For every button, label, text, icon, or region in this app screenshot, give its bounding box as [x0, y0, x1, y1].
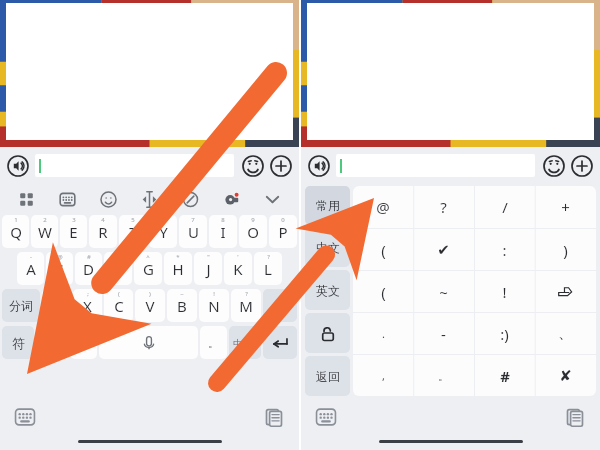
button[interactable]: ?: [231, 289, 261, 322]
button[interactable]: Clipboard: [564, 406, 586, 428]
button[interactable]: Collapse: [252, 184, 293, 215]
button[interactable]: Keyboard: [14, 406, 36, 428]
button[interactable]: %: [104, 252, 132, 285]
button[interactable]: 中/英: [229, 326, 261, 359]
button[interactable]: ~: [413, 271, 474, 312]
button[interactable]: Backspace: [263, 289, 297, 322]
button[interactable]: Attach: [170, 184, 211, 215]
button[interactable]: 3: [60, 215, 87, 248]
button[interactable]: .: [353, 313, 413, 354]
button[interactable]: [336, 154, 535, 177]
button[interactable]: @: [353, 186, 413, 228]
button[interactable]: 返回: [305, 356, 350, 396]
button[interactable]: More: [270, 155, 292, 177]
button[interactable]: Clipboard: [263, 406, 285, 428]
button[interactable]: ?: [254, 252, 282, 285]
button[interactable]: Keyboard: [315, 406, 337, 428]
staticText: ?: [267, 253, 270, 261]
button[interactable]: Text selection: [129, 184, 170, 215]
button[interactable]: #: [75, 252, 102, 285]
button[interactable]: 9: [239, 215, 267, 248]
staticText: !: [213, 290, 215, 298]
button[interactable]: (: [353, 271, 413, 312]
staticText: ~: [439, 282, 448, 302]
button[interactable]: 。: [413, 355, 474, 396]
button[interactable]: Enter: [263, 326, 297, 359]
button[interactable]: (: [353, 229, 413, 270]
button[interactable]: Emoji: [242, 155, 264, 177]
button[interactable]: ✔: [413, 229, 474, 270]
button[interactable]: ?: [413, 186, 474, 228]
button[interactable]: 中文: [305, 228, 350, 267]
staticText: B: [177, 296, 187, 316]
button[interactable]: ": [194, 252, 222, 285]
staticText: F: [114, 259, 122, 279]
staticText: 2: [43, 216, 47, 224]
button[interactable]: !: [199, 289, 229, 322]
button[interactable]: 英文: [305, 270, 350, 310]
button[interactable]: ,: [70, 326, 97, 359]
button[interactable]: ~: [167, 289, 197, 322]
button[interactable]: ;: [73, 289, 102, 322]
button[interactable]: 5: [119, 215, 147, 248]
button[interactable]: -: [413, 313, 474, 354]
button[interactable]: Stickers: [211, 184, 252, 215]
button[interactable]: Emoji: [543, 155, 565, 177]
staticText: @: [57, 253, 63, 261]
button[interactable]: ✘: [535, 355, 596, 396]
button[interactable]: :: [474, 229, 535, 270]
staticText: :): [500, 324, 509, 344]
button[interactable]: ^: [134, 252, 162, 285]
staticText: 4: [101, 216, 105, 224]
button[interactable]: @: [46, 252, 73, 285]
button[interactable]: Keyboard layout: [47, 184, 88, 215]
button[interactable]: Pointing hand: [535, 271, 596, 312]
button[interactable]: ,: [353, 355, 413, 396]
button[interactable]: ): [535, 229, 596, 270]
button[interactable]: Voice: [308, 155, 330, 177]
staticText: -: [441, 324, 446, 344]
button[interactable]: ': [224, 252, 252, 285]
button[interactable]: (: [104, 289, 133, 322]
button[interactable]: 1: [2, 215, 29, 248]
button[interactable]: 7: [179, 215, 207, 248]
button[interactable]: 0: [269, 215, 297, 248]
staticText: 1: [14, 216, 18, 224]
button[interactable]: 符: [2, 326, 34, 359]
button[interactable]: Emoji: [88, 184, 129, 215]
button[interactable]: Lock: [305, 313, 350, 353]
staticText: N: [208, 296, 220, 316]
button[interactable]: Apps: [6, 184, 47, 215]
staticText: A: [26, 259, 36, 279]
button[interactable]: 2: [31, 215, 58, 248]
staticText: ': [237, 253, 239, 261]
button[interactable]: +: [535, 186, 596, 228]
button[interactable]: #: [474, 355, 535, 396]
button[interactable]: Space: [99, 326, 198, 359]
button[interactable]: ): [135, 289, 165, 322]
button[interactable]: 123: [36, 326, 68, 359]
button[interactable]: :): [474, 313, 535, 354]
staticText: 。: [438, 369, 449, 383]
button[interactable]: [35, 154, 234, 177]
button[interactable]: 常用: [305, 186, 350, 225]
button[interactable]: 6: [149, 215, 177, 248]
button[interactable]: -: [17, 252, 44, 285]
staticText: 7: [191, 216, 195, 224]
staticText: ;: [87, 290, 89, 298]
button[interactable]: 分词: [2, 289, 40, 322]
button[interactable]: /: [474, 186, 535, 228]
button[interactable]: 。: [200, 326, 227, 359]
button[interactable]: 8: [209, 215, 237, 248]
button[interactable]: !: [474, 271, 535, 312]
staticText: 常用: [316, 198, 340, 213]
button[interactable]: Voice: [7, 155, 29, 177]
button[interactable]: :: [42, 289, 71, 322]
staticText: O: [247, 222, 259, 242]
button[interactable]: More: [571, 155, 593, 177]
staticText: :: [502, 240, 507, 260]
button[interactable]: 、: [535, 313, 596, 354]
button[interactable]: 4: [89, 215, 117, 248]
staticText: 5: [131, 216, 135, 224]
button[interactable]: *: [164, 252, 192, 285]
